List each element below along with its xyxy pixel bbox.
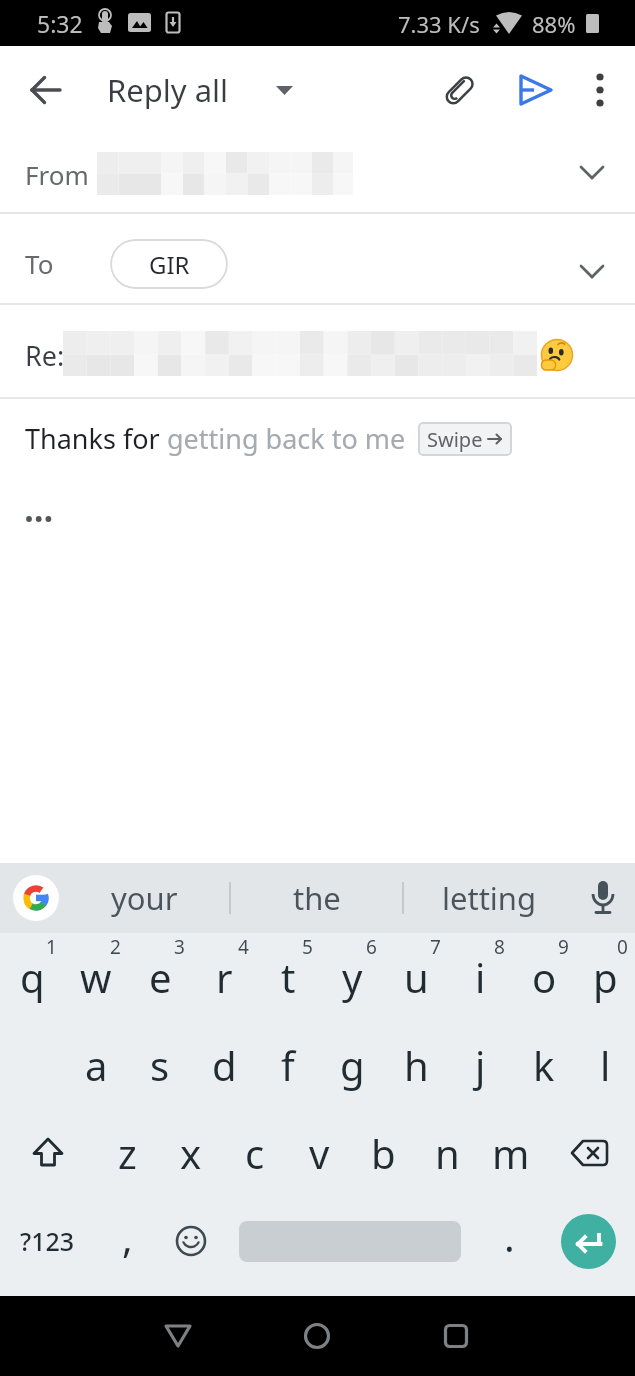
button[interactable]: your [59,863,229,933]
staticText: 5:32 [37,8,83,39]
staticText: q [20,950,45,1004]
button[interactable] [576,66,624,114]
button[interactable]: f [256,1021,320,1109]
staticText: Re: [25,337,65,374]
button[interactable] [543,1109,635,1197]
button[interactable]: x [159,1109,223,1197]
button[interactable] [293,1312,341,1360]
staticText: GIR [149,248,190,281]
button[interactable]: . [477,1197,541,1285]
button[interactable]: , [95,1197,159,1285]
button[interactable]: j [448,1021,512,1109]
button[interactable] [432,1312,480,1360]
button[interactable] [13,875,59,921]
staticText: Thanks for [25,420,167,457]
staticText: c [245,1126,265,1180]
button[interactable]: v [287,1109,351,1197]
staticText: Reply all [107,69,229,111]
button[interactable] [223,1197,477,1285]
staticText: w [80,950,112,1004]
button[interactable]: e [128,933,192,1021]
button[interactable]: b [351,1109,415,1197]
staticText: v [309,1126,330,1180]
staticText: letting [442,877,537,919]
button[interactable]: i [448,933,512,1021]
button[interactable] [22,66,70,114]
staticText: d [212,1038,237,1092]
button[interactable]: t [256,933,320,1021]
button[interactable]: q [0,933,64,1021]
button[interactable]: s [128,1021,192,1109]
staticText: getting back to me [167,420,406,457]
staticText: s [150,1038,170,1092]
staticText: 0 [617,934,628,960]
staticText: 8 [494,934,505,960]
staticText: 7 [430,934,441,960]
button[interactable]: p [576,933,635,1021]
button[interactable]: GIR [110,239,228,289]
button[interactable]: Swipe [418,422,512,456]
button[interactable]: o [512,933,576,1021]
staticText: y [342,950,363,1004]
staticText: t [281,950,296,1004]
button[interactable]: To [0,214,635,303]
staticText: 3 [174,934,185,960]
button[interactable] [0,1109,95,1197]
staticText: n [435,1126,460,1180]
button[interactable]: letting [404,863,575,933]
button[interactable]: d [192,1021,256,1109]
staticText: f [281,1038,295,1092]
staticText: g [340,1038,365,1092]
button[interactable]: ?123 [0,1197,95,1285]
button[interactable]: c [223,1109,287,1197]
button[interactable]: r [192,933,256,1021]
staticText: the [293,877,341,919]
staticText: 2 [110,934,121,960]
button[interactable] [154,1312,202,1360]
staticText: z [118,1126,137,1180]
button[interactable]: n [415,1109,479,1197]
button[interactable]: u [384,933,448,1021]
button[interactable]: g [320,1021,384,1109]
staticText: o [532,950,557,1004]
staticText: 6 [366,934,377,960]
button[interactable]: h [384,1021,448,1109]
staticText: l [600,1038,611,1092]
staticText: r [216,950,233,1004]
staticText: 88% [532,9,576,39]
staticText: 5 [302,934,313,960]
button[interactable]: y [320,933,384,1021]
button[interactable]: z [95,1109,159,1197]
button[interactable] [159,1197,223,1285]
button[interactable]: Re: [0,305,635,397]
button[interactable]: m [479,1109,543,1197]
button[interactable]: a [64,1021,128,1109]
staticText: a [85,1038,108,1092]
staticText: . [504,1209,515,1263]
staticText: ?123 [20,1224,75,1258]
staticText: x [180,1126,202,1180]
staticText: your [111,877,178,919]
staticText: , [122,1210,133,1264]
staticText: e [149,950,172,1004]
button[interactable]: Reply all [107,46,293,133]
button[interactable]: the [231,863,402,933]
button[interactable] [541,1197,635,1285]
staticText: j [475,1038,486,1092]
staticText: k [533,1038,555,1092]
staticText: p [593,950,618,1004]
staticText: From [25,157,89,192]
button[interactable]: k [512,1021,576,1109]
staticText: b [371,1126,396,1180]
button[interactable] [436,66,484,114]
button[interactable] [512,66,560,114]
staticText: i [475,950,486,1004]
staticText: Swipe [427,426,483,453]
button[interactable] [575,863,631,933]
button[interactable]: l [576,1021,635,1109]
button[interactable] [26,516,52,522]
button[interactable]: From [0,133,635,212]
button[interactable]: w [64,933,128,1021]
staticText: h [404,1038,429,1092]
staticText: m [492,1126,530,1180]
